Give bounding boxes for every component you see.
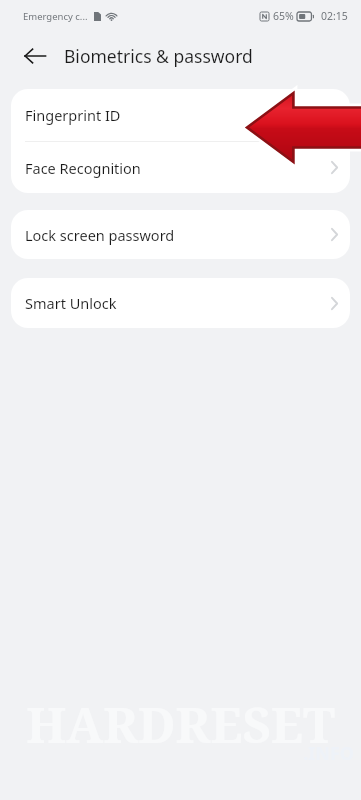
staticText: Biometrics & password [64,44,253,68]
staticText: Fingerprint ID [25,105,121,125]
button[interactable]: Lock screen password [11,210,350,259]
staticText: Face Recognition [25,158,141,178]
staticText: Emergency c... [23,10,88,23]
staticText: 02:15 [321,9,348,23]
staticText: 65% [273,9,294,23]
button[interactable]: Back [13,34,57,78]
button[interactable]: Fingerprint ID [11,89,350,141]
button[interactable]: Face Recognition [11,142,350,193]
staticText: Smart Unlock [25,293,117,313]
staticText: Lock screen password [25,225,175,245]
button[interactable]: Smart Unlock [11,278,350,328]
